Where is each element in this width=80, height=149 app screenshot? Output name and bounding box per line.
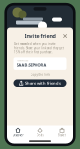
staticText: Copy the link xyxy=(30,73,49,76)
button[interactable]: Deals xyxy=(29,126,51,139)
staticText: Deals xyxy=(36,134,43,137)
button[interactable]: Discover xyxy=(7,126,29,139)
staticText: Share with friends xyxy=(25,81,61,86)
button[interactable]: Share with friends xyxy=(13,79,66,87)
button[interactable]: Copy the link xyxy=(26,71,53,78)
staticText: YOUR INVITE CODE xyxy=(16,60,28,62)
staticText: SAAB-SEPHORA xyxy=(16,62,46,67)
staticText: Get rewarded when you invite friends. Sh… xyxy=(14,42,64,54)
button[interactable]: Close xyxy=(62,33,68,39)
staticText: Invite friend xyxy=(24,32,55,40)
staticText: Basket xyxy=(58,134,66,137)
button[interactable]: Basket xyxy=(51,126,73,139)
staticText: Discover xyxy=(12,134,23,137)
